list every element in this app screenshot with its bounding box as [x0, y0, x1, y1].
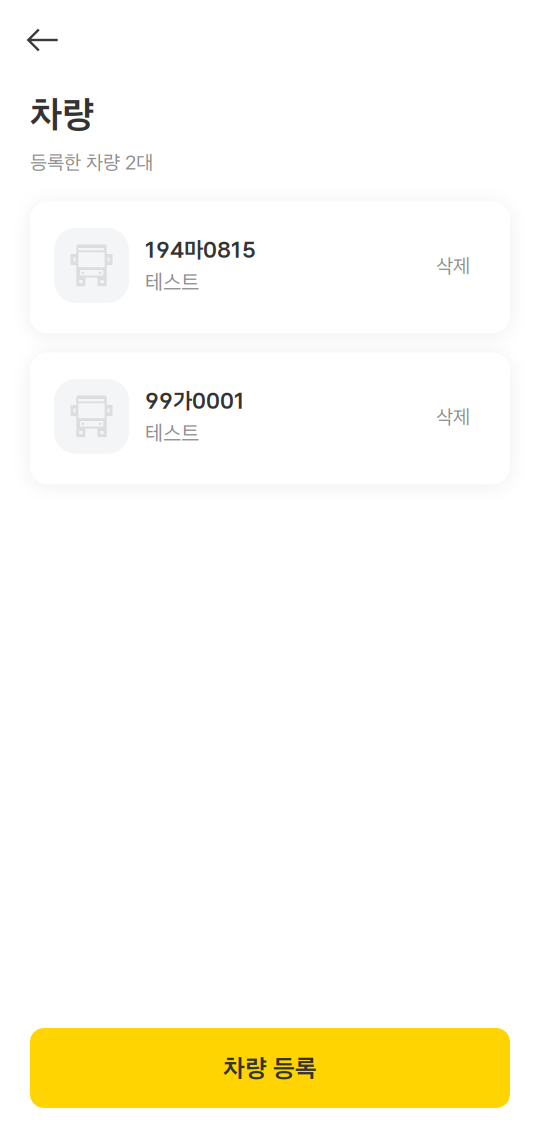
staticText: 차량 등록 [223, 1053, 317, 1083]
staticText: 테스트 [145, 269, 199, 295]
staticText: 194마0815 [145, 236, 256, 263]
staticText: 삭제 [436, 254, 470, 278]
button[interactable]: 삭제 [436, 405, 470, 432]
staticText: 등록한 차량 2대 [30, 150, 153, 174]
staticText: 테스트 [145, 420, 199, 446]
staticText: 삭제 [436, 405, 470, 429]
button[interactable]: Back [0, 0, 74, 66]
staticText: 차량 [30, 92, 94, 136]
button[interactable]: 차량 등록 [30, 1028, 510, 1108]
staticText: 99가0001 [145, 387, 245, 414]
button[interactable]: 99가0001 [30, 352, 510, 484]
button[interactable]: 삭제 [436, 254, 470, 281]
button[interactable]: 194마0815 [30, 201, 510, 333]
